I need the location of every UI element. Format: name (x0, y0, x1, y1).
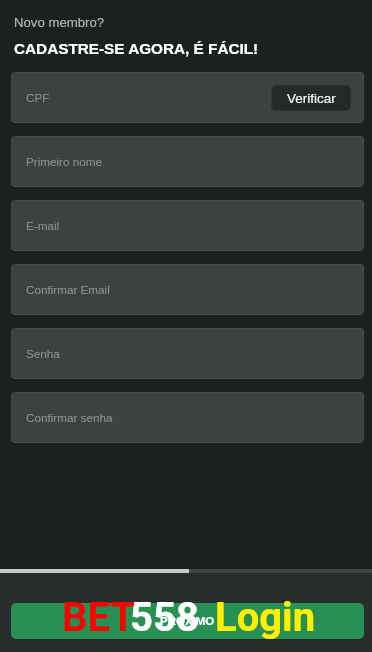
staticText: 558 (130, 594, 199, 641)
staticText: Confirmar Email (26, 283, 110, 296)
button[interactable]: Senha (11, 328, 364, 379)
button[interactable]: Confirmar senha (11, 392, 364, 443)
staticText: CADASTRE-SE AGORA, É FÁCIL! (14, 40, 259, 57)
staticText: PRÓXIMO (160, 615, 215, 628)
button[interactable]: Primeiro nome (11, 136, 364, 187)
staticText: Login (215, 594, 316, 641)
button[interactable]: Verificar (271, 85, 351, 111)
staticText: E-mail (26, 219, 60, 232)
staticText: CPF (26, 91, 50, 104)
staticText: Senha (26, 347, 60, 360)
button[interactable]: CPF (11, 72, 364, 123)
staticText: Novo membro? (14, 15, 105, 30)
button[interactable]: E-mail (11, 200, 364, 251)
button[interactable]: PRÓXIMO (11, 603, 364, 639)
staticText: Primeiro nome (26, 155, 102, 168)
staticText: Verificar (287, 91, 336, 106)
staticText: BET (62, 594, 136, 641)
button[interactable]: Confirmar Email (11, 264, 364, 315)
staticText: Confirmar senha (26, 411, 113, 424)
